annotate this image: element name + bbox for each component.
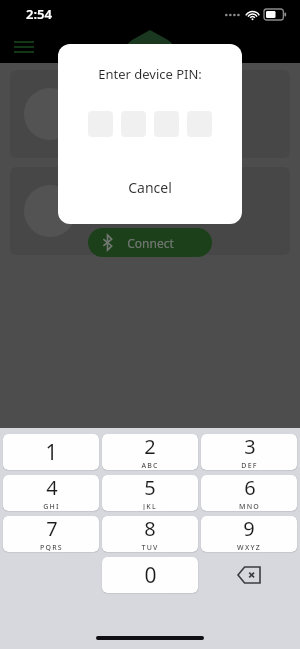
button[interactable]: 9 [201, 516, 297, 552]
button[interactable] [10, 70, 290, 158]
staticText: 9 [243, 516, 255, 542]
button[interactable]: 2 [102, 434, 198, 470]
button[interactable]: 0 [102, 557, 198, 593]
staticText: PQRS [40, 543, 63, 551]
staticText: JKL [143, 502, 157, 510]
staticText: TUV [141, 543, 159, 551]
staticText: WXYZ [237, 543, 261, 551]
button[interactable]: Connect [88, 228, 212, 257]
staticText: Cancel [128, 178, 172, 197]
staticText: 7 [46, 516, 58, 542]
button[interactable]: 3 [201, 434, 297, 470]
button[interactable]: 4 [3, 475, 99, 511]
staticText: MNO [239, 502, 260, 510]
staticText: 6 [244, 475, 256, 501]
button[interactable]: 1 [3, 434, 99, 470]
staticText: 2:54 [26, 5, 52, 23]
staticText: Enter device PIN: [98, 65, 202, 83]
staticText: 4 [46, 475, 58, 501]
button[interactable] [10, 167, 290, 255]
button[interactable]: 6 [201, 475, 297, 511]
button[interactable]: 7 [3, 516, 99, 552]
staticText: 0 [144, 561, 157, 590]
staticText: 8 [144, 516, 156, 542]
button[interactable]: Backspace [201, 557, 297, 593]
staticText: ABC [141, 461, 159, 469]
button[interactable]: 8 [102, 516, 198, 552]
staticText: GHI [43, 502, 60, 510]
button[interactable]: Menu [14, 41, 36, 57]
staticText: 2 [144, 434, 156, 460]
staticText: 3 [244, 434, 256, 460]
button[interactable]: 5 [102, 475, 198, 511]
staticText: 5 [144, 475, 156, 501]
staticText: Connect [127, 235, 174, 251]
button[interactable]: Cancel [58, 172, 242, 202]
staticText: 1 [45, 438, 58, 467]
staticText: DEF [241, 461, 258, 469]
